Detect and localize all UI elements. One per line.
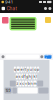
staticText: z (17, 81, 19, 86)
staticText: t (25, 67, 26, 72)
button[interactable]: y (27, 66, 29, 72)
staticText: q (14, 67, 16, 72)
staticText: p (37, 67, 39, 72)
button[interactable]: l (36, 73, 37, 79)
staticText: Send (44, 53, 51, 61)
button[interactable]: x (19, 80, 21, 86)
button[interactable]: u (30, 66, 32, 72)
staticText: o (34, 67, 36, 72)
staticText: d (21, 74, 23, 79)
button[interactable]: 123 (5, 87, 12, 93)
staticText: 123 (6, 88, 11, 93)
staticText: w (17, 67, 20, 72)
staticText: n (31, 81, 33, 86)
staticText: Chat (7, 6, 18, 11)
button[interactable]: k (33, 73, 35, 79)
staticText: x (19, 81, 21, 86)
button[interactable]: d (21, 73, 23, 79)
staticText: a (16, 74, 18, 79)
button[interactable]: v (25, 80, 27, 86)
button[interactable]: Send (44, 55, 51, 59)
button[interactable]: r (23, 66, 24, 72)
button[interactable]: t (25, 66, 26, 72)
button[interactable]: i (32, 66, 33, 72)
button[interactable]: f (24, 73, 25, 79)
button[interactable] (10, 80, 16, 86)
staticText: r (23, 67, 24, 72)
button[interactable]: s (19, 73, 21, 79)
staticText: u (30, 67, 32, 72)
button[interactable]: q (14, 66, 16, 72)
staticText: k (33, 74, 35, 79)
staticText: b (28, 81, 30, 86)
button[interactable] (18, 87, 38, 93)
button[interactable] (12, 87, 17, 93)
staticText: i (32, 67, 33, 72)
staticText: v (25, 81, 27, 86)
staticText: h (29, 74, 31, 79)
button[interactable]: j (32, 73, 33, 79)
button[interactable]: w (17, 66, 20, 72)
button[interactable] (38, 87, 48, 93)
button[interactable]: m (33, 80, 36, 86)
staticText: l (36, 74, 37, 79)
button[interactable]: Back (0, 7, 7, 10)
button[interactable]: z (17, 80, 19, 86)
staticText: y (27, 67, 29, 72)
staticText: e (20, 67, 22, 72)
button[interactable]: h (29, 73, 31, 79)
button[interactable]: More (48, 7, 53, 10)
staticText: 9:41 (5, 0, 13, 4)
staticText: m (33, 81, 36, 86)
button[interactable]: n (31, 80, 33, 86)
staticText: c (22, 81, 24, 86)
button[interactable]: a (16, 73, 18, 79)
staticText: f (24, 74, 25, 79)
button[interactable] (37, 80, 43, 86)
staticText: j (32, 74, 33, 79)
button[interactable]: o (34, 66, 36, 72)
button[interactable]: p (37, 66, 39, 72)
button[interactable]: b (28, 80, 30, 86)
button[interactable]: g (26, 73, 28, 79)
button[interactable]: c (22, 80, 24, 86)
button[interactable]: Call (43, 7, 48, 10)
staticText: s (19, 74, 21, 79)
button[interactable]: e (20, 66, 22, 72)
staticText: g (26, 74, 28, 79)
